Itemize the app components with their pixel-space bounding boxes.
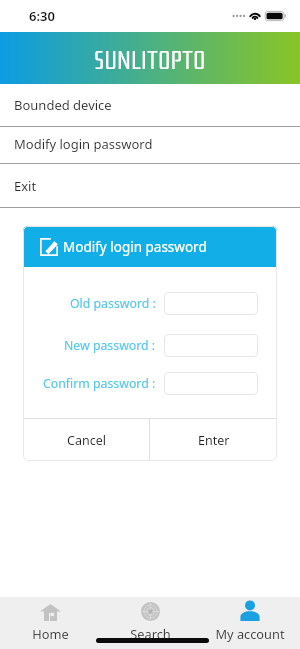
staticText: Old password : [70, 295, 156, 312]
other: Search [141, 602, 160, 621]
staticText: My account [215, 625, 285, 642]
button[interactable]: Home [0, 597, 100, 642]
button[interactable] [164, 334, 258, 357]
button[interactable]: Exit [0, 164, 300, 208]
staticText: Exit [14, 177, 37, 195]
staticText: Enter [198, 432, 230, 449]
button[interactable]: Search [100, 597, 200, 642]
staticText: Bounded device [14, 96, 112, 114]
button[interactable] [164, 292, 258, 315]
button[interactable]: Modify login password [0, 127, 300, 164]
button[interactable]: Bounded device [0, 84, 300, 127]
staticText: SUNLITOPTO [94, 46, 206, 76]
staticText: Modify login password [63, 238, 207, 256]
staticText: Modify login password [14, 135, 153, 153]
button[interactable] [164, 372, 258, 395]
staticText: Confirm password : [43, 375, 156, 392]
other: My account [240, 601, 260, 621]
button[interactable]: Enter [150, 419, 277, 461]
staticText: New password : [64, 337, 156, 354]
staticText: Cancel [67, 432, 106, 449]
staticText: 6:30 [29, 7, 55, 25]
button[interactable]: My account [200, 597, 300, 642]
staticText: Home [32, 625, 69, 642]
staticText: Search [130, 625, 171, 642]
button[interactable]: Cancel [23, 419, 149, 461]
other: Home [40, 604, 61, 621]
